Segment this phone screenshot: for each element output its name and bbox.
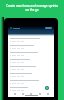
button[interactable]: Create (45, 86, 49, 90)
button[interactable]: Tab (46, 92, 49, 95)
button[interactable] (8, 78, 54, 85)
button[interactable] (8, 64, 54, 71)
button[interactable] (8, 36, 54, 43)
button[interactable] (8, 57, 54, 64)
button[interactable]: Tab (13, 92, 16, 95)
staticText: Create new items and manage sprints (6, 4, 58, 8)
button[interactable]: Tab (21, 92, 24, 95)
button[interactable] (8, 85, 54, 91)
button[interactable] (8, 50, 54, 57)
button[interactable] (8, 71, 54, 78)
button[interactable] (8, 43, 54, 50)
staticText: on the go (25, 8, 39, 12)
button[interactable]: Tab (38, 92, 41, 95)
button[interactable]: Tab (29, 92, 32, 95)
